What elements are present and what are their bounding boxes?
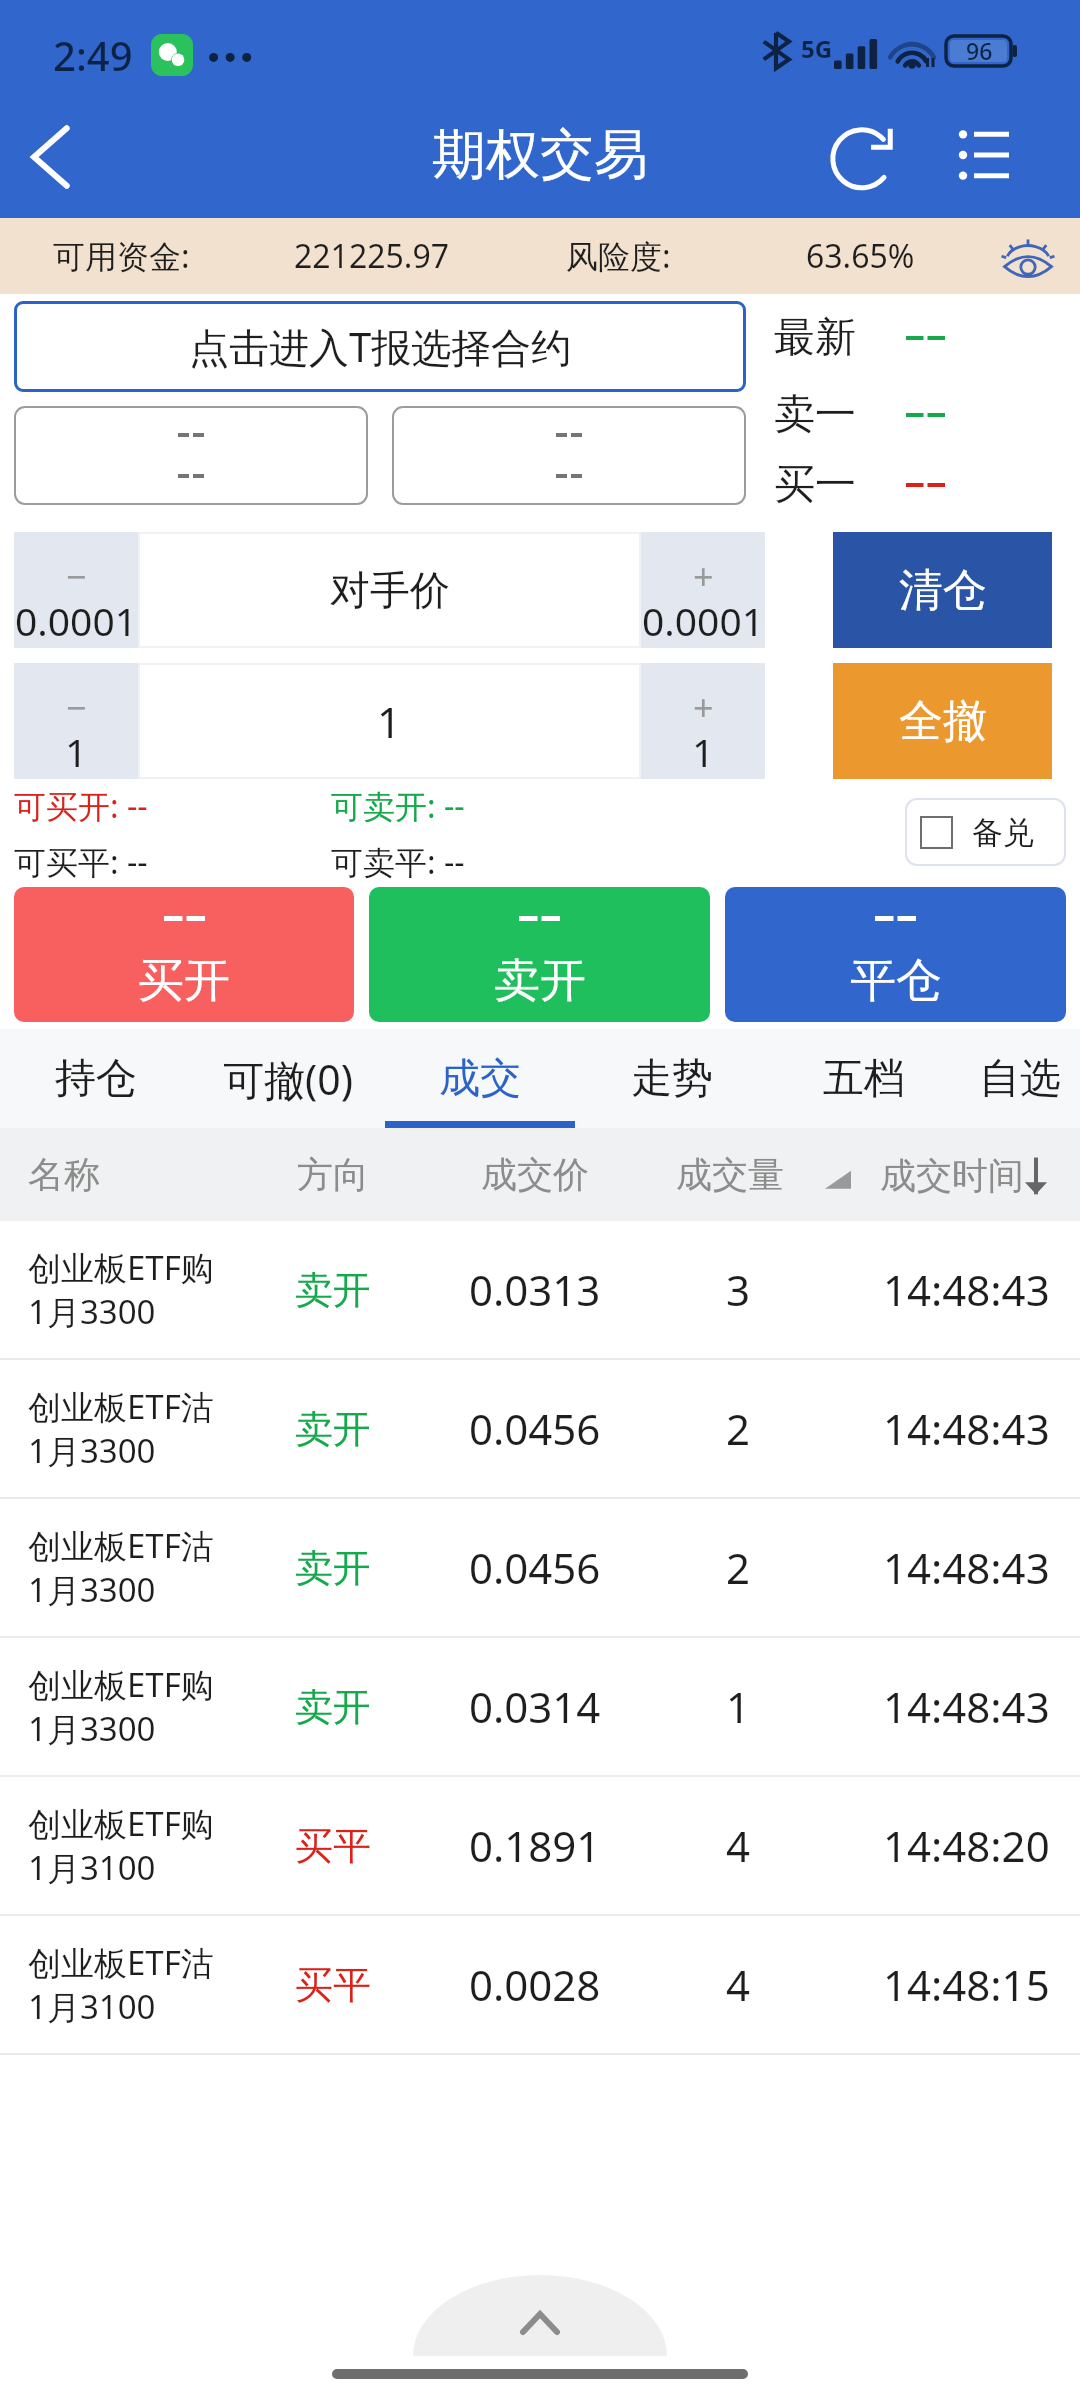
staticText: 买平: [295, 1961, 371, 2009]
staticText: 1: [692, 725, 715, 778]
button[interactable]: 平仓: [725, 887, 1066, 1022]
staticText: 平仓: [850, 952, 942, 1010]
staticText: 创业板ETF沽 1月3100: [28, 1940, 214, 2029]
staticText: 1: [726, 1678, 751, 1735]
staticText: 买平: [295, 1822, 371, 1870]
staticText: 卖开: [295, 1683, 371, 1731]
staticText: 清仓: [899, 563, 987, 618]
button[interactable]: Refresh: [804, 110, 924, 200]
staticText: 0.1891: [469, 1817, 601, 1874]
staticText: 备兑: [972, 813, 1034, 852]
button[interactable]: 创业板ETF购 1月3300: [0, 1221, 1080, 1358]
staticText: 创业板ETF沽 1月3300: [28, 1384, 214, 1473]
button[interactable]: 创业板ETF购 1月3100: [0, 1777, 1080, 1914]
staticText: 0.0456: [469, 1400, 601, 1457]
staticText: +: [693, 683, 714, 732]
staticText: 风险度:: [566, 234, 671, 278]
button[interactable]: 买开: [14, 887, 354, 1022]
staticText: 0.0456: [469, 1539, 601, 1596]
staticText: 可撤(0): [223, 1051, 354, 1107]
staticText: −: [66, 552, 87, 601]
button[interactable]: 走势: [576, 1029, 768, 1128]
staticText: 0.0313: [469, 1261, 601, 1318]
button[interactable]: 清仓: [833, 532, 1052, 648]
staticText: 可卖平: --: [331, 840, 465, 884]
staticText: 63.65%: [806, 234, 915, 278]
staticText: 可用资金:: [53, 234, 190, 278]
staticText: 走势: [631, 1053, 713, 1105]
staticText: 2: [726, 1539, 751, 1596]
button[interactable]: 点击进入T报选择合约: [14, 301, 746, 392]
staticText: 0.0028: [469, 1956, 601, 2013]
staticText: 成交量: [676, 1152, 784, 1197]
staticText: 全撤: [899, 694, 987, 749]
button[interactable]: 持仓: [0, 1029, 192, 1128]
staticText: 4: [726, 1956, 751, 2013]
staticText: 221225.97: [294, 234, 450, 278]
staticText: 可卖开: --: [331, 784, 465, 828]
staticText: 创业板ETF购 1月3100: [28, 1801, 214, 1890]
button[interactable]: 全撤: [833, 663, 1052, 779]
staticText: 买开: [138, 952, 230, 1010]
staticText: 期权交易: [432, 121, 648, 189]
staticText: 2:49: [53, 28, 133, 82]
staticText: 创业板ETF购 1月3300: [28, 1245, 214, 1334]
staticText: 14:48:43: [883, 1261, 1050, 1318]
staticText: 成交: [439, 1053, 521, 1105]
staticText: 3: [726, 1261, 751, 1318]
staticText: 五档: [823, 1053, 905, 1105]
button[interactable]: 创业板ETF沽 1月3300: [0, 1360, 1080, 1497]
button[interactable]: 卖开: [369, 887, 710, 1022]
staticText: 14:48:43: [883, 1678, 1050, 1735]
button[interactable]: Toggle balance visibility: [976, 218, 1080, 294]
staticText: 买一: [774, 459, 856, 511]
staticText: 卖一: [774, 389, 856, 441]
staticText: 持仓: [55, 1053, 137, 1105]
staticText: 最新: [774, 312, 856, 364]
staticText: 14:48:43: [883, 1400, 1050, 1457]
staticText: 创业板ETF购 1月3300: [28, 1662, 214, 1751]
button[interactable]: Back: [0, 110, 100, 204]
button[interactable]: 备兑: [905, 798, 1066, 866]
staticText: 14:48:43: [883, 1539, 1050, 1596]
button[interactable]: −: [14, 532, 138, 648]
staticText: 创业板ETF沽 1月3300: [28, 1523, 214, 1612]
button[interactable]: [14, 406, 368, 505]
staticText: −: [66, 683, 87, 732]
staticText: 卖开: [295, 1405, 371, 1453]
staticText: 点击进入T报选择合约: [189, 319, 572, 374]
button[interactable]: +: [641, 532, 765, 648]
button[interactable]: 创业板ETF购 1月3300: [0, 1638, 1080, 1775]
staticText: +: [693, 552, 714, 601]
staticText: 0.0314: [469, 1678, 601, 1735]
staticText: 4: [726, 1817, 751, 1874]
staticText: 96: [966, 35, 993, 66]
staticText: 1: [377, 693, 402, 750]
staticText: 14:48:15: [883, 1956, 1050, 2013]
staticText: 0.0001: [15, 594, 137, 647]
staticText: 可买开: --: [14, 784, 148, 828]
button[interactable]: 成交: [384, 1029, 576, 1128]
button[interactable]: 创业板ETF沽 1月3100: [0, 1916, 1080, 2053]
staticText: 方向: [297, 1152, 369, 1197]
staticText: 0.0001: [642, 594, 764, 647]
button[interactable]: 创业板ETF沽 1月3300: [0, 1499, 1080, 1636]
button[interactable]: [392, 406, 746, 505]
button[interactable]: 五档: [768, 1029, 960, 1128]
staticText: 1: [65, 725, 88, 778]
button[interactable]: 可撤(0): [192, 1029, 384, 1128]
staticText: 卖开: [494, 952, 586, 1010]
staticText: 5G: [801, 32, 833, 65]
staticText: 2: [726, 1400, 751, 1457]
staticText: 卖开: [295, 1544, 371, 1592]
button[interactable]: +: [641, 663, 765, 779]
staticText: 对手价: [330, 565, 450, 615]
staticText: 名称: [28, 1152, 100, 1197]
staticText: 可买平: --: [14, 840, 148, 884]
staticText: 卖开: [295, 1266, 371, 1314]
staticText: 成交时间: [880, 1153, 1024, 1198]
staticText: 14:48:20: [883, 1817, 1050, 1874]
button[interactable]: 自选: [960, 1029, 1080, 1128]
button[interactable]: Menu: [924, 110, 1044, 200]
button[interactable]: −: [14, 663, 138, 779]
